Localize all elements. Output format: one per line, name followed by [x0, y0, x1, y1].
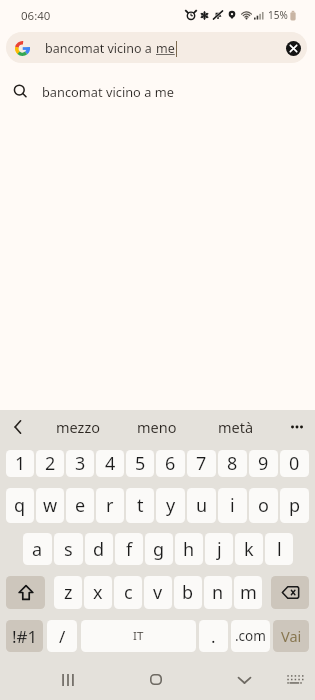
staticText: bancomat vicino a me	[42, 83, 174, 100]
staticText: i	[230, 493, 235, 518]
staticText: m	[240, 580, 257, 605]
button[interactable]: Backspace	[271, 576, 309, 609]
staticText: c	[124, 580, 133, 605]
button[interactable]: y	[156, 488, 185, 523]
staticText: 5	[135, 451, 146, 476]
button[interactable]: More options	[278, 410, 315, 443]
button[interactable]: !#1	[6, 620, 43, 652]
staticText: p	[289, 493, 301, 518]
button[interactable]: .com	[231, 620, 270, 652]
button[interactable]: r	[96, 488, 124, 523]
button[interactable]: 8	[218, 450, 247, 477]
staticText: 4	[105, 451, 116, 476]
staticText: x	[93, 580, 103, 605]
button[interactable]: 5	[126, 450, 154, 477]
button[interactable]: k	[235, 533, 263, 565]
button[interactable]: a	[23, 533, 52, 565]
staticText: !#1	[12, 625, 38, 648]
button[interactable]: Hide keyboard	[222, 657, 266, 700]
button[interactable]: z	[54, 576, 82, 609]
staticText: y	[166, 493, 176, 518]
button[interactable]: 1	[6, 450, 34, 477]
button[interactable]: 0	[280, 450, 309, 477]
staticText: /	[59, 625, 66, 648]
staticText: t	[137, 493, 144, 518]
staticText: 2	[45, 451, 56, 476]
button[interactable]: 9	[249, 450, 278, 477]
button[interactable]: Change keyboard	[274, 657, 315, 700]
staticText: s	[64, 537, 73, 562]
button[interactable]: b	[174, 576, 202, 609]
button[interactable]: o	[249, 488, 278, 523]
button[interactable]: s	[54, 533, 83, 565]
staticText: v	[153, 580, 163, 605]
button[interactable]: IT	[81, 620, 196, 652]
staticText: z	[64, 580, 73, 605]
button[interactable]: bancomat vicino a me	[0, 78, 315, 105]
staticText: 0	[289, 451, 300, 476]
staticText: f	[126, 537, 133, 562]
staticText: e	[75, 493, 86, 518]
staticText: j	[217, 537, 222, 562]
staticText: 8	[227, 451, 238, 476]
staticText: 9	[258, 451, 269, 476]
button[interactable]: c	[114, 576, 142, 609]
button[interactable]: .	[199, 620, 228, 652]
staticText: bancomat vicino a	[45, 40, 156, 57]
staticText: k	[244, 537, 254, 562]
staticText: 7	[196, 451, 207, 476]
button[interactable]: 2	[36, 450, 64, 477]
button[interactable]: h	[175, 533, 203, 565]
button[interactable]: w	[36, 488, 64, 523]
staticText: a	[32, 537, 43, 562]
button[interactable]: 4	[96, 450, 124, 477]
button[interactable]: /	[47, 620, 77, 652]
staticText: Vai	[281, 626, 302, 646]
button[interactable]: Recent apps	[46, 657, 90, 700]
staticText: g	[153, 537, 165, 562]
staticText: q	[14, 493, 26, 518]
staticText: w	[43, 493, 58, 518]
button[interactable]: d	[85, 533, 113, 565]
button[interactable]: l	[265, 533, 293, 565]
staticText: metà	[218, 417, 254, 437]
staticText: .	[211, 625, 216, 648]
button[interactable]: t	[126, 488, 154, 523]
staticText: b	[182, 580, 194, 605]
button[interactable]: m	[234, 576, 262, 609]
button[interactable]: metà	[196, 410, 275, 443]
button[interactable]: 6	[156, 450, 185, 477]
button[interactable]: i	[218, 488, 247, 523]
button[interactable]: 3	[66, 450, 94, 477]
button[interactable]: Previous suggestions	[0, 410, 36, 443]
button[interactable]: j	[205, 533, 233, 565]
button[interactable]: u	[187, 488, 216, 523]
button[interactable]: Shift	[6, 576, 45, 609]
staticText: .com	[235, 627, 266, 645]
button[interactable]: meno	[117, 410, 196, 443]
staticText: 6	[165, 451, 176, 476]
button[interactable]: e	[66, 488, 94, 523]
button[interactable]: mezzo	[39, 410, 117, 443]
button[interactable]: x	[84, 576, 112, 609]
staticText: h	[183, 537, 195, 562]
staticText: 15%	[268, 8, 288, 22]
button[interactable]: Clear search	[281, 36, 305, 60]
staticText: 06:40	[21, 8, 51, 24]
staticText: r	[106, 493, 114, 518]
staticText: l	[277, 537, 282, 562]
staticText: mezzo	[56, 417, 100, 437]
button[interactable]: q	[6, 488, 34, 523]
button[interactable]: bancomat vicino a	[6, 32, 307, 63]
button[interactable]: g	[145, 533, 173, 565]
button[interactable]: v	[144, 576, 172, 609]
staticText: 1	[15, 451, 26, 476]
staticText: 3	[75, 451, 86, 476]
button[interactable]: n	[204, 576, 232, 609]
button[interactable]: f	[115, 533, 143, 565]
button[interactable]: Home	[134, 657, 178, 700]
button[interactable]: 7	[187, 450, 216, 477]
button[interactable]: Vai	[273, 620, 309, 652]
button[interactable]: p	[280, 488, 309, 523]
staticText: d	[93, 537, 105, 562]
